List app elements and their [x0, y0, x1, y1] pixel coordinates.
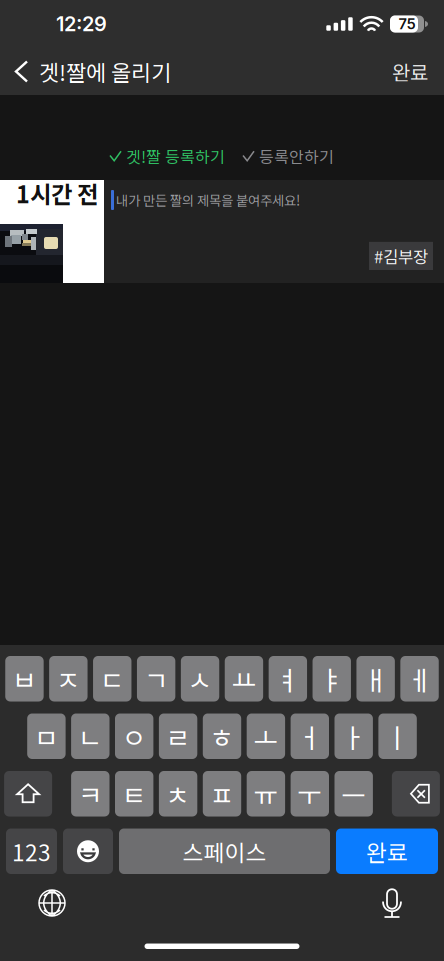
staticText: 내가 만든 짤의 제목을 붙여주세요! [116, 190, 300, 210]
staticText: 겟!짤에 올리기 [39, 56, 171, 87]
button[interactable]: #김부장 [369, 242, 433, 270]
staticText: ㅋ [78, 774, 103, 813]
button[interactable]: Dictation [362, 881, 422, 925]
button[interactable]: ㅅ [181, 656, 219, 701]
button[interactable]: ㄴ [71, 713, 109, 759]
button[interactable]: ㅏ [334, 713, 373, 759]
staticText: ㅏ [341, 717, 366, 755]
button[interactable]: Switch keyboard [22, 881, 82, 925]
button[interactable]: 스페이스 [119, 828, 330, 874]
button[interactable]: ㄱ [137, 656, 175, 701]
staticText: ㅂ [12, 659, 37, 698]
button[interactable]: ㅕ [269, 656, 307, 701]
staticText: ㅐ [363, 659, 388, 698]
button[interactable]: ㅓ [291, 713, 329, 759]
button[interactable]: ㅐ [356, 656, 395, 701]
staticText: 스페이스 [182, 835, 266, 868]
button[interactable]: 완료 [392, 48, 444, 95]
staticText: ㅍ [209, 774, 234, 813]
staticText: ㅅ [188, 659, 213, 698]
button[interactable]: ㅁ [27, 713, 66, 759]
button[interactable]: ㄷ [93, 656, 131, 701]
button[interactable]: Shift [4, 771, 52, 816]
button[interactable]: ㅂ [5, 656, 44, 701]
button[interactable]: 등록안하기 [243, 143, 334, 169]
staticText: 등록안하기 [259, 144, 334, 168]
staticText: ㅎ [209, 717, 234, 755]
staticText: ㅓ [297, 717, 322, 755]
button[interactable]: ㅣ [378, 713, 417, 759]
staticText: ㄴ [78, 717, 103, 755]
staticText: ㄱ [144, 659, 169, 698]
staticText: ㅇ [122, 717, 147, 755]
staticText: 1시간 전 [16, 176, 98, 210]
staticText: 겟!짤 등록하기 [126, 144, 225, 168]
staticText: 완료 [366, 835, 408, 868]
button[interactable]: ㅔ [400, 656, 439, 701]
button[interactable]: ㅡ [334, 771, 373, 816]
button[interactable]: Emoji keyboard [63, 828, 113, 874]
staticText: ㅁ [34, 717, 59, 755]
staticText: ㅣ [385, 717, 410, 755]
staticText: 12:29 [56, 12, 107, 36]
button[interactable]: ㅍ [203, 771, 241, 816]
staticText: ㅈ [56, 659, 81, 698]
button[interactable]: ㄹ [159, 713, 197, 759]
staticText: 완료 [392, 57, 428, 86]
staticText: 123 [12, 835, 51, 868]
staticText: #김부장 [374, 244, 428, 268]
button[interactable]: 겟!짤에 올리기 [0, 48, 171, 95]
staticText: ㅔ [407, 659, 432, 698]
button[interactable]: ㅇ [115, 713, 153, 759]
button[interactable]: ㅌ [115, 771, 153, 816]
button[interactable]: 123 [6, 828, 57, 874]
button[interactable]: ㅜ [291, 771, 329, 816]
button[interactable]: ㅈ [49, 656, 88, 701]
staticText: ㅜ [297, 774, 322, 813]
staticText: ㄷ [100, 659, 125, 698]
button[interactable]: ㅎ [203, 713, 241, 759]
staticText: 75 [398, 15, 415, 33]
button[interactable]: Delete [392, 771, 440, 816]
staticText: ㅗ [253, 717, 278, 755]
button[interactable]: ㅊ [159, 771, 197, 816]
button[interactable]: 완료 [336, 828, 438, 874]
staticText: ㅕ [275, 659, 300, 698]
button[interactable]: ㅑ [312, 656, 351, 701]
staticText: ㅑ [319, 659, 344, 698]
button[interactable]: ㅋ [71, 771, 109, 816]
button[interactable]: ㅠ [247, 771, 285, 816]
button[interactable]: 겟!짤 등록하기 [110, 143, 225, 169]
staticText: ㄹ [166, 717, 191, 755]
staticText: ㅛ [231, 659, 256, 698]
staticText: ㅊ [166, 774, 191, 813]
staticText: ㅌ [122, 774, 147, 813]
staticText: ㅡ [341, 774, 366, 813]
button[interactable]: ㅗ [247, 713, 285, 759]
staticText: ㅠ [253, 774, 278, 813]
button[interactable]: ㅛ [225, 656, 263, 701]
